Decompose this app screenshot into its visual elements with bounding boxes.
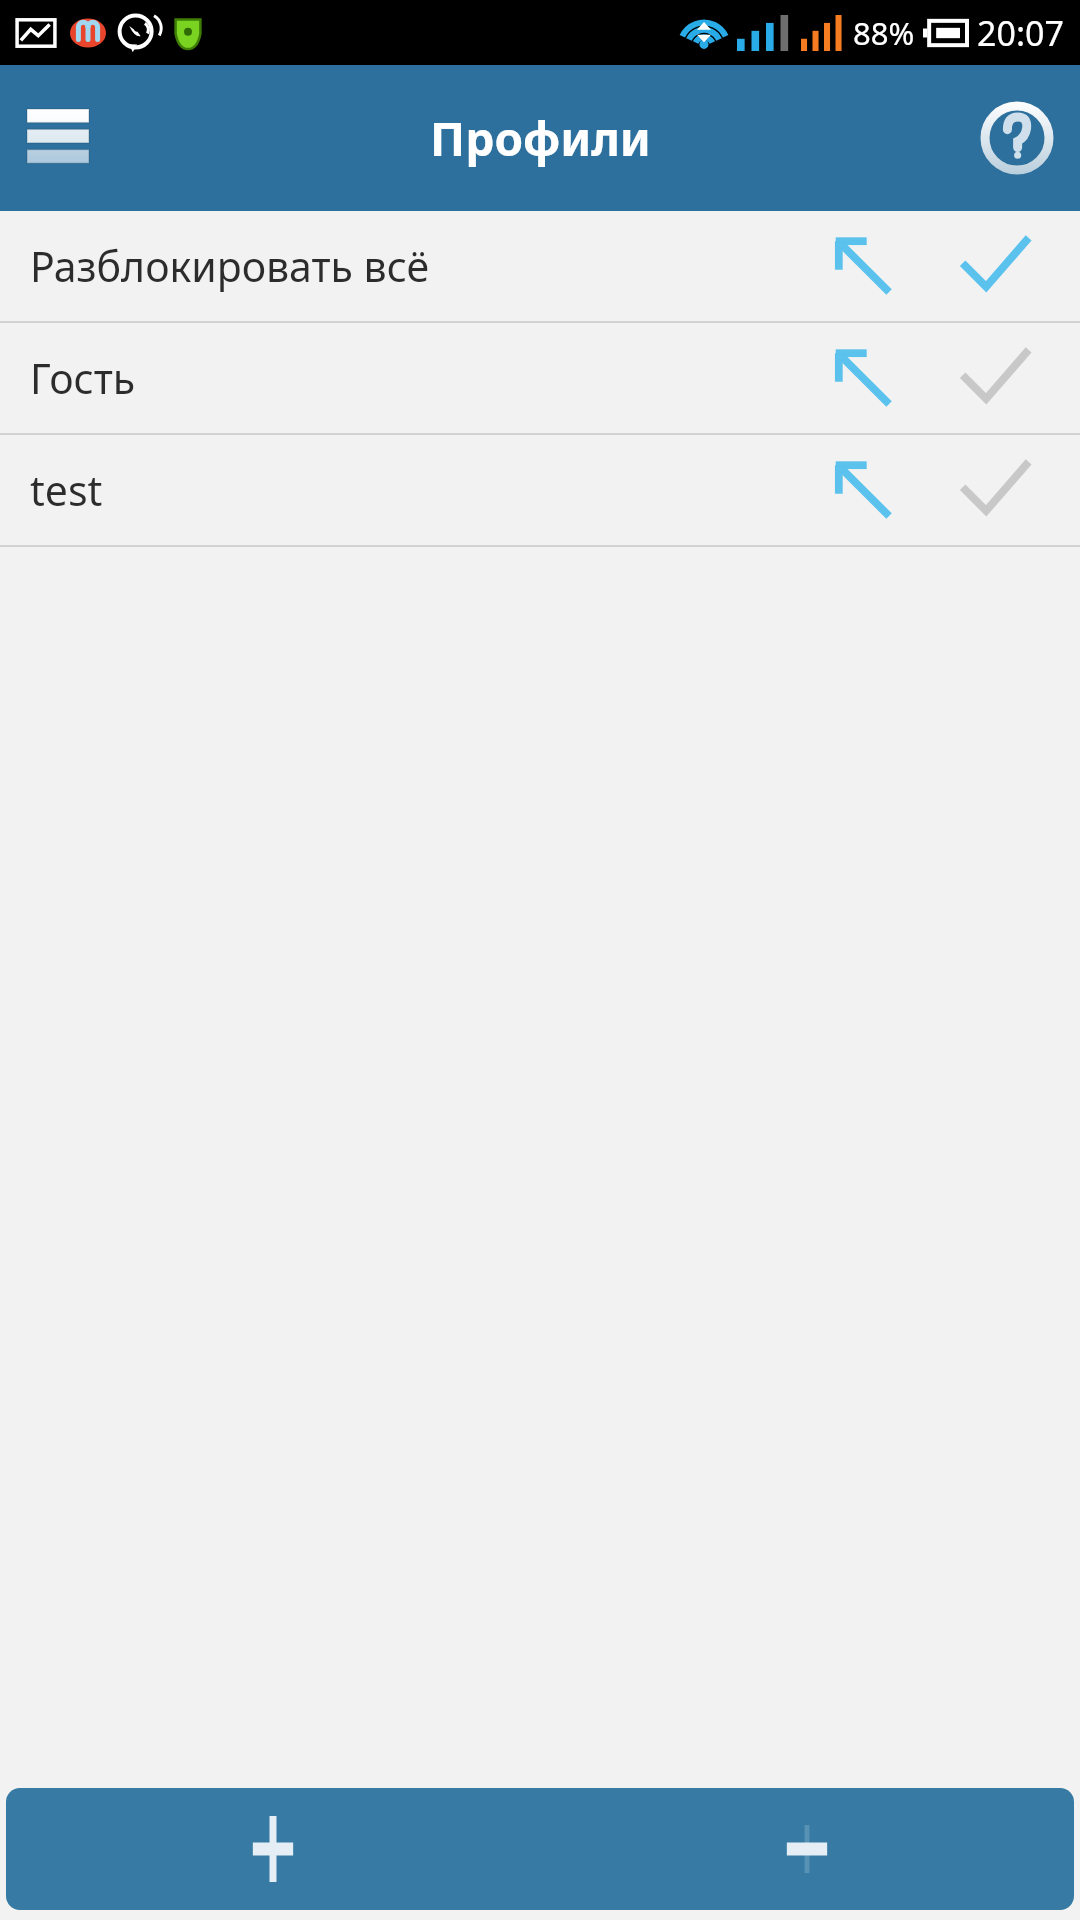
button[interactable]: Remove profile (540, 1788, 1074, 1910)
button[interactable]: Разблокировать всё (0, 211, 1080, 321)
staticText: Профили (430, 107, 651, 170)
staticText: 88% (853, 12, 915, 54)
button[interactable]: Гость (0, 323, 1080, 433)
staticText: 20:07 (977, 10, 1064, 56)
staticText: Разблокировать всё (30, 238, 430, 294)
staticText: test (30, 462, 103, 518)
button[interactable]: test (0, 435, 1080, 545)
button[interactable]: Add profile (6, 1788, 540, 1910)
staticText: Гость (30, 350, 136, 406)
button[interactable]: Menu (18, 98, 98, 178)
button[interactable]: Help (974, 95, 1060, 181)
